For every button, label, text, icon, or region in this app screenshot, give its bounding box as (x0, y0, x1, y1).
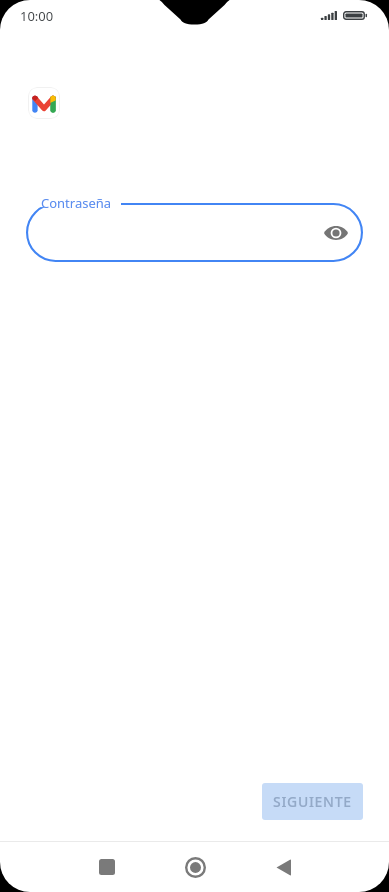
staticText: SIGUIENTE (273, 792, 352, 811)
staticText: Contraseña (41, 194, 112, 212)
button[interactable]: Contraseña (26, 203, 363, 262)
staticText: 10:00 (20, 7, 54, 25)
button[interactable]: Mostrar contraseña (321, 218, 351, 248)
button[interactable]: Atrás (239, 844, 327, 890)
button[interactable]: Inicio (151, 844, 239, 890)
button[interactable]: Recientes (63, 844, 151, 890)
button[interactable]: SIGUIENTE (262, 783, 363, 820)
